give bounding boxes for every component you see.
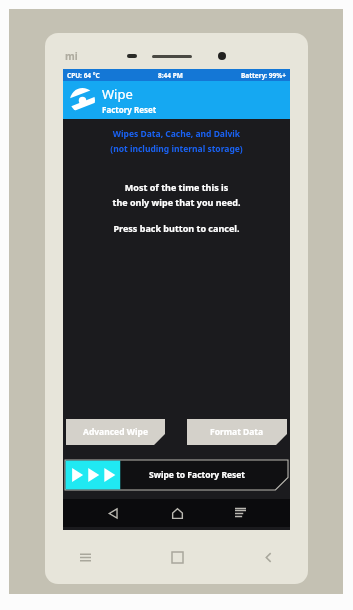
staticText: Swipe to Factory Reset	[149, 469, 246, 481]
staticText: Most of the time this is	[63, 181, 290, 193]
staticText: mi	[65, 49, 78, 63]
staticText: 8:44 PM	[158, 71, 183, 80]
staticText: Advanced Wipe	[83, 426, 148, 438]
button[interactable]: Wipe	[63, 81, 290, 119]
staticText: Battery: 99%+	[241, 71, 286, 80]
button[interactable]: Back	[100, 500, 126, 526]
button[interactable]: Swipe to Factory Reset	[65, 460, 288, 490]
button[interactable]: Menu	[71, 543, 99, 571]
staticText: Factory Reset	[102, 104, 157, 115]
button[interactable]: Menu	[227, 500, 253, 526]
staticText: (not including internal storage)	[63, 143, 290, 155]
button[interactable]: Home	[164, 500, 190, 526]
button[interactable]: Advanced Wipe	[66, 419, 165, 445]
button[interactable]: Home	[163, 543, 191, 571]
button[interactable]: Back	[254, 543, 282, 571]
staticText: Wipes Data, Cache, and Dalvik	[63, 128, 290, 140]
button[interactable]: Format Data	[187, 419, 287, 445]
staticText: Format Data	[210, 426, 264, 438]
staticText: the only wipe that you need.	[63, 196, 290, 208]
staticText: Wipe	[102, 85, 133, 103]
staticText: Press back button to cancel.	[63, 222, 290, 234]
staticText: CPU: 64 °C	[67, 71, 100, 80]
